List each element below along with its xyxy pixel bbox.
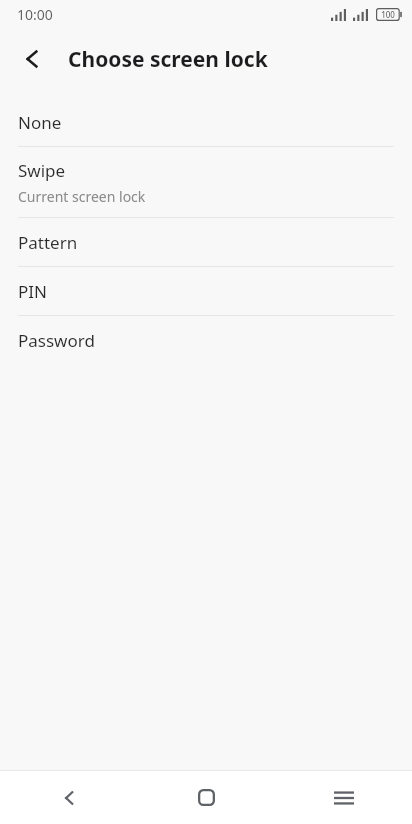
button[interactable]: PIN (0, 267, 412, 315)
staticText: Swipe (18, 159, 66, 182)
button[interactable]: Recent apps (275, 771, 412, 824)
staticText: Password (18, 329, 95, 352)
button[interactable]: Pattern (0, 218, 412, 266)
staticText: Choose screen lock (68, 45, 268, 74)
button[interactable]: Home (138, 771, 275, 824)
staticText: PIN (18, 280, 47, 303)
staticText: Pattern (18, 231, 78, 254)
button[interactable]: Back (8, 35, 56, 83)
button[interactable]: None (0, 98, 412, 146)
button[interactable]: Back (0, 771, 138, 824)
button[interactable]: Swipe (0, 147, 412, 217)
staticText: None (18, 111, 62, 134)
staticText: 100 (381, 9, 395, 20)
staticText: Current screen lock (18, 187, 146, 206)
staticText: 10:00 (17, 5, 53, 24)
button[interactable]: Password (0, 316, 412, 364)
